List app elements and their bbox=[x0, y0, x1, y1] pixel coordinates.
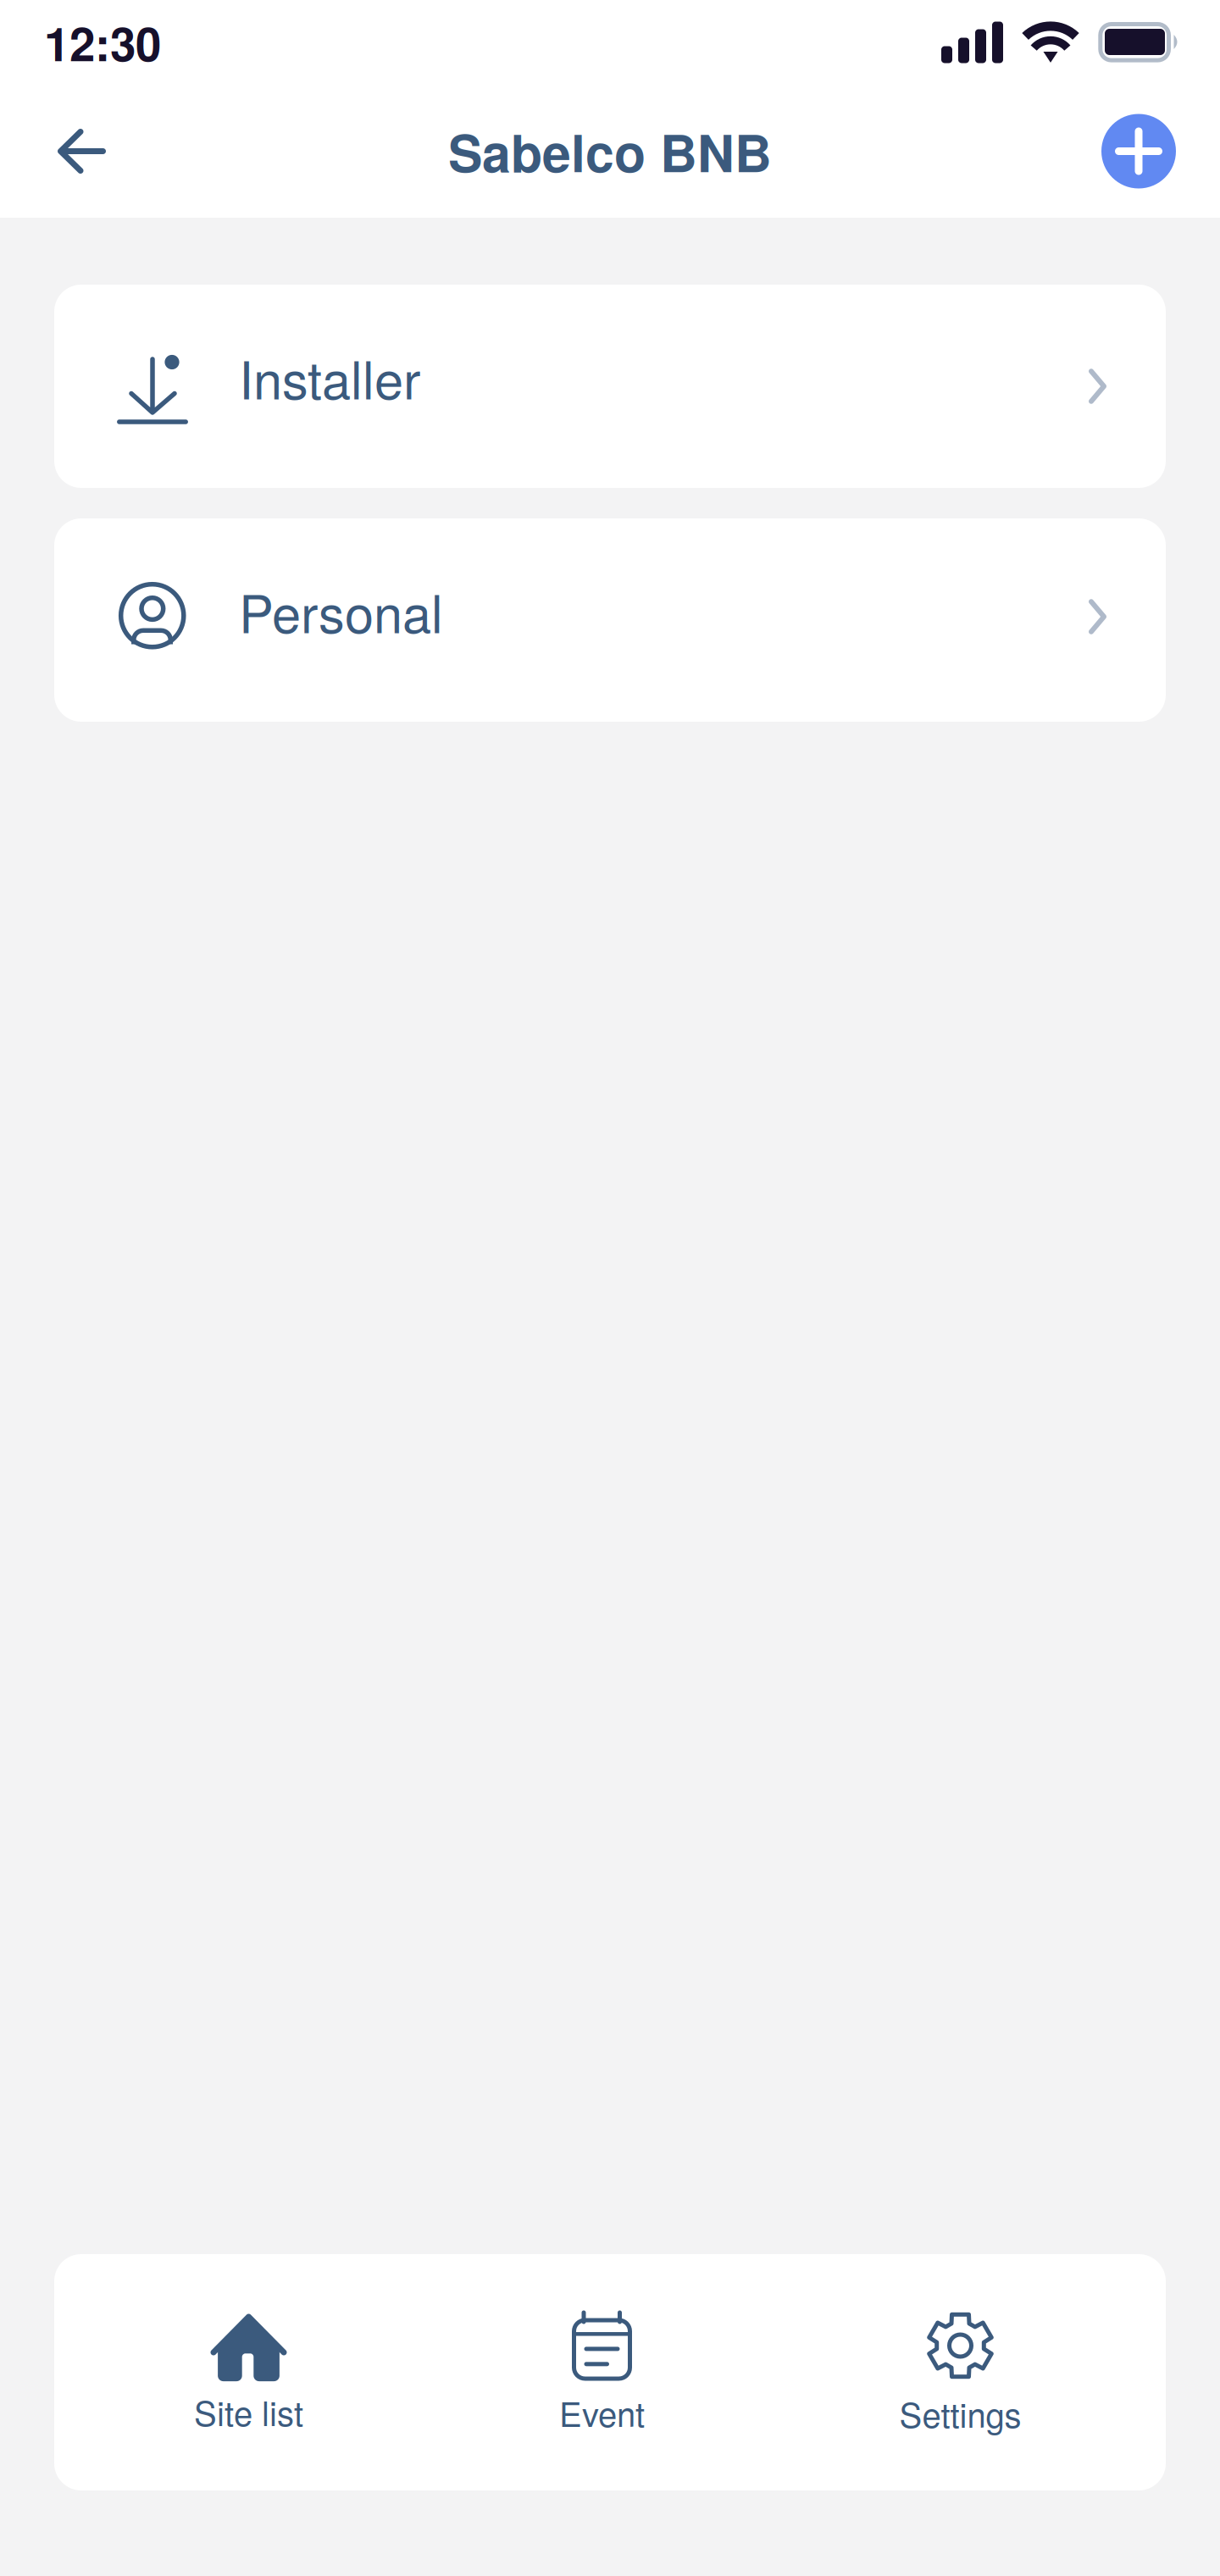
button[interactable]: Add bbox=[1101, 114, 1176, 188]
button[interactable]: Site list bbox=[194, 2254, 303, 2490]
staticText: Sabelco BNB bbox=[448, 114, 772, 188]
staticText: Installer bbox=[239, 340, 420, 414]
staticText: Site list bbox=[194, 2387, 303, 2436]
button[interactable]: Event bbox=[559, 2254, 645, 2490]
button[interactable]: Personal bbox=[54, 518, 1166, 722]
staticText: Settings bbox=[899, 2389, 1021, 2437]
staticText: 12:30 bbox=[44, 9, 161, 76]
staticText: Event bbox=[559, 2388, 645, 2436]
button[interactable]: Back bbox=[40, 108, 106, 194]
button[interactable]: Settings bbox=[899, 2254, 1021, 2490]
staticText: Personal bbox=[239, 574, 443, 648]
button[interactable]: Installer bbox=[54, 285, 1166, 488]
